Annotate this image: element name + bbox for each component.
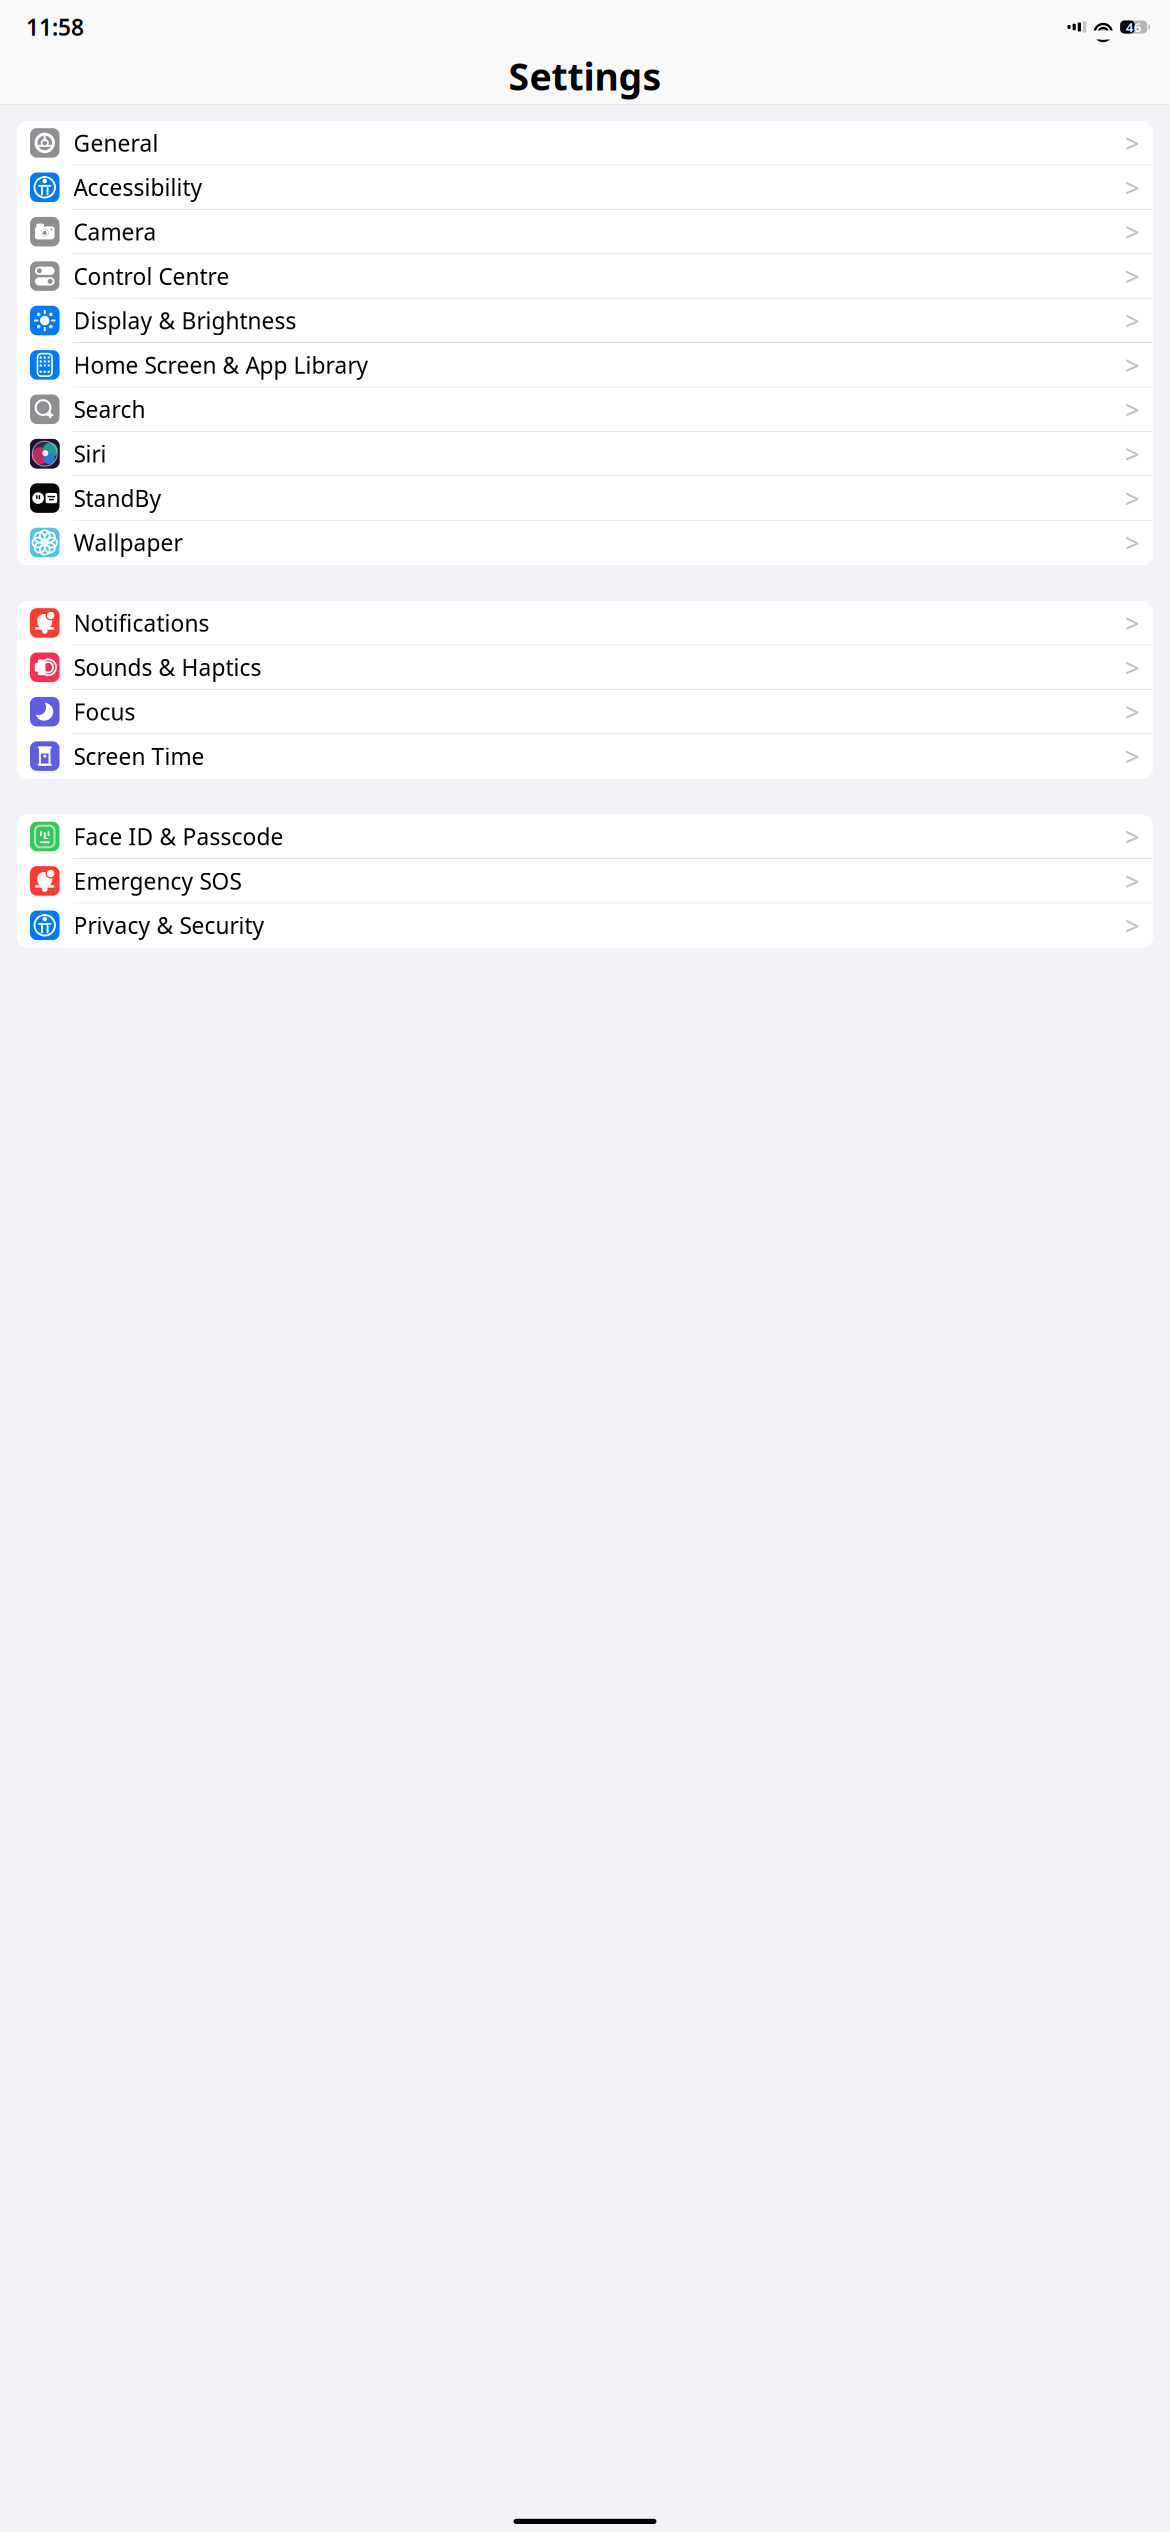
- staticText: >: [1125, 908, 1139, 942]
- staticText: >: [1125, 304, 1139, 337]
- button[interactable]: Sounds & Haptics: [17, 645, 1153, 690]
- staticText: Siri: [73, 439, 106, 469]
- button[interactable]: General: [17, 121, 1153, 165]
- staticText: Screen Time: [73, 741, 204, 771]
- staticText: Notifications: [73, 608, 209, 638]
- staticText: General: [73, 128, 158, 158]
- button[interactable]: Wallpaper: [17, 521, 1153, 565]
- staticText: >: [1125, 820, 1139, 853]
- button[interactable]: Focus: [17, 690, 1153, 734]
- staticText: Privacy & Security: [73, 910, 264, 940]
- button[interactable]: Notifications: [17, 601, 1153, 645]
- button[interactable]: StandBy: [17, 476, 1153, 521]
- staticText: >: [1125, 695, 1139, 728]
- staticText: Focus: [73, 697, 135, 727]
- button[interactable]: Control Centre: [17, 254, 1153, 299]
- button[interactable]: Search: [17, 387, 1153, 432]
- staticText: 46: [1126, 18, 1142, 36]
- staticText: Control Centre: [73, 261, 229, 291]
- button[interactable]: Accessibility: [17, 165, 1153, 210]
- staticText: StandBy: [73, 483, 161, 513]
- staticText: >: [1125, 606, 1139, 640]
- staticText: Camera: [73, 217, 156, 247]
- staticText: >: [1125, 170, 1139, 204]
- staticText: >: [1125, 215, 1139, 248]
- staticText: >: [1125, 739, 1139, 773]
- staticText: Settings: [508, 51, 661, 101]
- button[interactable]: Home Screen & App Library: [17, 343, 1153, 387]
- staticText: >: [1125, 126, 1139, 160]
- button[interactable]: Face ID & Passcode: [17, 815, 1153, 859]
- staticText: 11:58: [26, 12, 84, 42]
- staticText: >: [1125, 864, 1139, 898]
- button[interactable]: Screen Time: [17, 734, 1153, 779]
- button[interactable]: Privacy & Security: [17, 903, 1153, 948]
- staticText: >: [1125, 437, 1139, 470]
- staticText: Wallpaper: [73, 527, 182, 557]
- staticText: Home Screen & App Library: [73, 350, 368, 380]
- staticText: Face ID & Passcode: [73, 821, 283, 851]
- staticText: Emergency SOS: [73, 866, 241, 896]
- button[interactable]: Siri: [17, 432, 1153, 476]
- staticText: Accessibility: [73, 172, 202, 202]
- button[interactable]: Display & Brightness: [17, 299, 1153, 343]
- button[interactable]: Emergency SOS: [17, 859, 1153, 903]
- staticText: >: [1125, 650, 1139, 684]
- staticText: >: [1125, 259, 1139, 293]
- button[interactable]: Camera: [17, 210, 1153, 254]
- staticText: Display & Brightness: [73, 305, 296, 335]
- staticText: >: [1125, 481, 1139, 515]
- staticText: Sounds & Haptics: [73, 652, 261, 682]
- staticText: >: [1125, 348, 1139, 382]
- staticText: >: [1125, 392, 1139, 426]
- staticText: >: [1125, 526, 1139, 559]
- staticText: Search: [73, 394, 145, 424]
